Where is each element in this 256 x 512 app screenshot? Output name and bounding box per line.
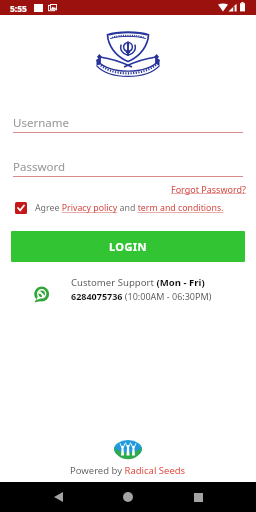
staticText: Customer Support (Mon - Fri)	[71, 276, 205, 289]
staticText: Powered by Radical Seeds	[70, 464, 186, 477]
staticText: 5:55	[10, 3, 27, 15]
staticText: Forgot Password?	[171, 183, 246, 195]
button[interactable]: Customer Support (Mon - Fri)	[33, 276, 212, 302]
button[interactable]: Forgot Password?	[171, 183, 246, 195]
staticText: Agree Privacy policy and term and condit…	[35, 202, 224, 214]
button[interactable]: Agree to terms	[15, 202, 27, 214]
staticText: Username	[13, 115, 69, 131]
staticText: LOGIN	[109, 239, 147, 254]
staticText: 6284075736 (10:00AM - 06:30PM)	[71, 290, 212, 302]
staticText: Password	[13, 159, 66, 175]
button[interactable]: LOGIN	[11, 231, 245, 262]
button[interactable]: Home	[110, 482, 146, 512]
button[interactable]: Recent apps	[180, 482, 216, 512]
button[interactable]: Back	[40, 482, 76, 512]
